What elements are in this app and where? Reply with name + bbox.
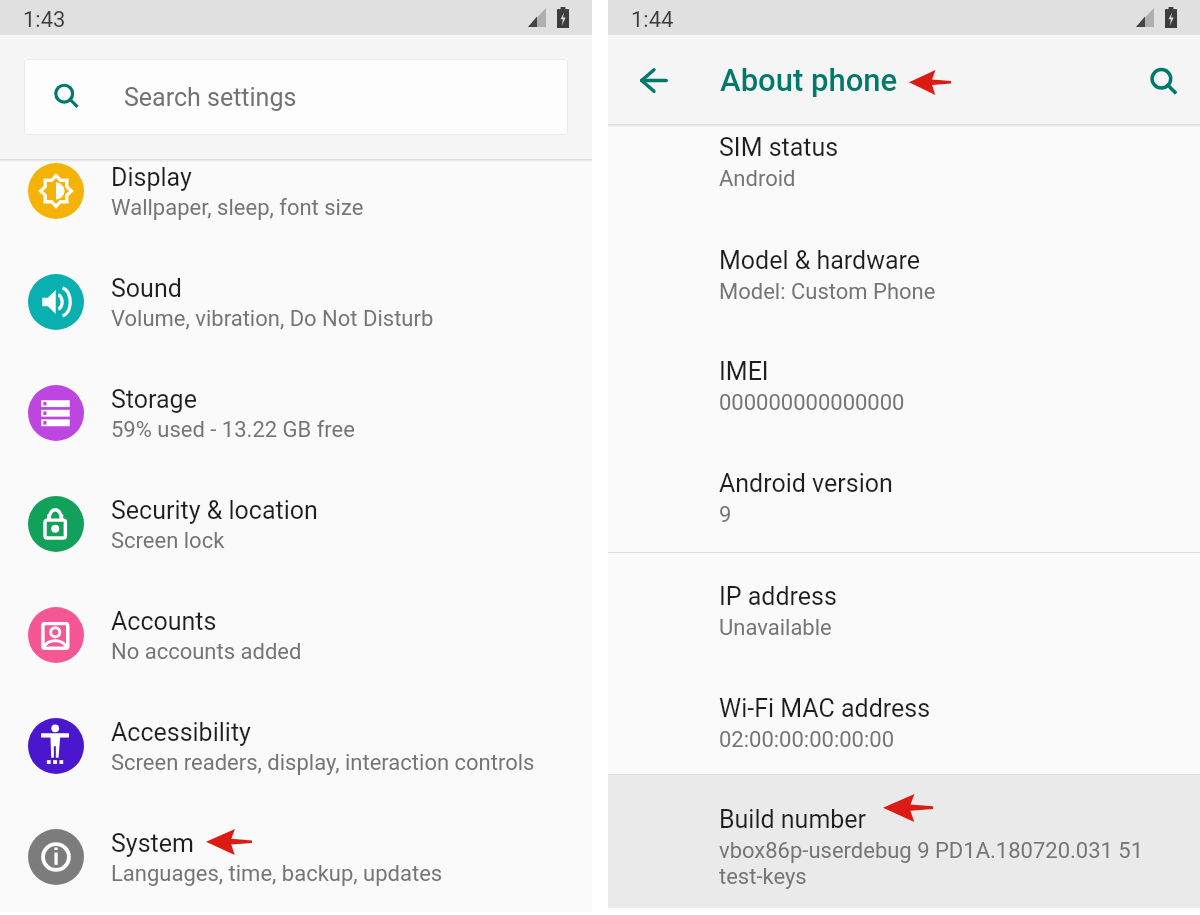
button[interactable]: Accounts <box>0 580 592 691</box>
button[interactable]: Android version <box>608 460 1200 572</box>
staticText: 02:00:00:00:00:00 <box>719 727 895 753</box>
staticText: IMEI <box>719 357 769 386</box>
button[interactable]: Model & hardware <box>608 237 1200 349</box>
staticText: Accounts <box>111 607 217 636</box>
staticText: Accessibility <box>111 718 251 747</box>
staticText: Security & location <box>111 496 318 525</box>
staticText: Wallpaper, sleep, font size <box>111 195 364 221</box>
staticText: 59% used - 13.22 GB free <box>111 417 355 443</box>
staticText: Storage <box>111 385 197 414</box>
staticText: vbox86p-userdebug 9 PD1A.180720.031 51 t… <box>719 838 1144 890</box>
button[interactable]: IP address <box>608 573 1200 685</box>
staticText: 9 <box>719 502 732 528</box>
staticText: SIM status <box>719 133 839 162</box>
staticText: Volume, vibration, Do Not Disturb <box>111 306 434 332</box>
staticText: About phone <box>720 62 898 98</box>
button[interactable]: Back <box>634 60 674 100</box>
staticText: System <box>111 829 194 858</box>
staticText: No accounts added <box>111 639 302 665</box>
button[interactable]: IMEI <box>608 348 1200 460</box>
button[interactable]: Build number <box>608 775 1200 908</box>
button[interactable]: System <box>0 802 592 913</box>
staticText: Android version <box>719 469 893 498</box>
staticText: Display <box>111 163 192 192</box>
button[interactable]: Search settings <box>24 59 568 135</box>
staticText: Screen readers, display, interaction con… <box>111 750 535 776</box>
button[interactable]: Accessibility <box>0 691 592 802</box>
staticText: 1:43 <box>23 7 66 33</box>
staticText: Model & hardware <box>719 246 921 275</box>
button[interactable]: Wi-Fi MAC address <box>608 685 1200 797</box>
button[interactable]: Search <box>1144 62 1184 102</box>
staticText: Wi-Fi MAC address <box>719 694 931 723</box>
staticText: Languages, time, backup, updates <box>111 861 443 887</box>
button[interactable]: Display <box>0 136 592 247</box>
staticText: Unavailable <box>719 615 832 641</box>
staticText: Screen lock <box>111 528 225 554</box>
staticText: 000000000000000 <box>719 390 905 416</box>
staticText: Android <box>719 166 796 192</box>
staticText: Search settings <box>124 83 297 112</box>
staticText: Sound <box>111 274 182 303</box>
button[interactable]: SIM status <box>608 124 1200 236</box>
staticText: 1:44 <box>631 7 674 33</box>
staticText: IP address <box>719 582 837 611</box>
button[interactable]: Sound <box>0 247 592 358</box>
button[interactable]: Storage <box>0 358 592 469</box>
button[interactable]: Security & location <box>0 469 592 580</box>
staticText: Build number <box>719 805 867 834</box>
staticText: Model: Custom Phone <box>719 279 936 305</box>
